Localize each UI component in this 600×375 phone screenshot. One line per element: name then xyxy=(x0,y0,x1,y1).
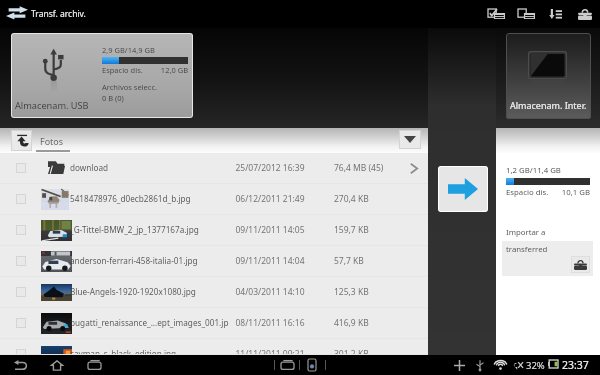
button[interactable]: Deselect all xyxy=(513,2,539,26)
button[interactable]: Tools xyxy=(573,2,597,26)
button[interactable]: transferred xyxy=(502,241,593,276)
button[interactable]: anderson-ferrari-458-italia-01.jpg xyxy=(0,246,428,277)
staticText: download xyxy=(70,162,232,173)
staticText: Almacenam. USB xyxy=(15,99,89,112)
staticText: 04/03/2011 14:10 xyxy=(226,286,314,298)
staticText: Almacenam. Inter. xyxy=(510,99,587,111)
staticText: 0 B (0) xyxy=(102,93,124,103)
button[interactable]: 5418478976_d0ecb2861d_b.jpg xyxy=(0,184,428,215)
staticText: Espacio dis. xyxy=(102,65,143,75)
staticText: Espacio dis. xyxy=(506,187,549,198)
staticText: 10,1 GB xyxy=(540,187,590,198)
staticText: transferred xyxy=(506,244,548,255)
staticText: 23:37 xyxy=(562,358,589,372)
staticText: _G-Tittel-BMW_2_jp_1377167a.jpg xyxy=(70,224,232,235)
staticText: 125,3 KB xyxy=(334,286,404,298)
staticText: 06/12/2011 21:49 xyxy=(226,193,314,205)
button[interactable]: Almacenam. USB xyxy=(12,34,192,117)
staticText: Fotos xyxy=(40,135,64,147)
staticText: 08/11/2011 16:16 xyxy=(226,317,314,329)
staticText: 2,9 GB/14,9 GB xyxy=(102,45,155,55)
button[interactable]: Blue-Angels-1920-1920x1080.jpg xyxy=(0,277,428,308)
staticText: 416,9 KB xyxy=(334,317,404,329)
staticText: 09/11/2011 14:05 xyxy=(226,224,314,236)
staticText: 270,4 KB xyxy=(334,193,404,205)
button[interactable]: _G-Tittel-BMW_2_jp_1377167a.jpg xyxy=(0,215,428,246)
button[interactable]: bugatti_renaissance_...ept_images_001.jp… xyxy=(0,308,428,339)
staticText: 159,7 KB xyxy=(334,224,404,236)
button[interactable]: Up one level xyxy=(11,130,32,151)
staticText: 12,0 GB xyxy=(132,65,188,75)
button[interactable]: Transfer files xyxy=(438,166,488,212)
button[interactable]: Almacenam. Inter. xyxy=(506,33,591,119)
staticText: 09/11/2011 14:04 xyxy=(226,255,314,267)
button[interactable]: Sort xyxy=(545,2,565,26)
staticText: 25/07/2012 16:39 xyxy=(226,162,314,174)
staticText: cayman_s_black_edition.jpg xyxy=(70,348,232,359)
staticText: bugatti_renaissance_...ept_images_001.jp… xyxy=(70,317,232,328)
staticText: Blue-Angels-1920-1920x1080.jpg xyxy=(70,286,232,297)
staticText: 5418478976_d0ecb2861d_b.jpg xyxy=(70,193,232,204)
staticText: Archivos selecc. xyxy=(102,82,157,92)
button[interactable]: Filter xyxy=(399,130,421,149)
button[interactable]: cayman_s_black_edition.jpg xyxy=(0,339,428,355)
staticText: 76,4 MB (45) xyxy=(334,162,404,174)
staticText: anderson-ferrari-458-italia-01.jpg xyxy=(70,255,232,266)
staticText: 32% xyxy=(526,359,545,372)
staticText: 1,2 GB/11,4 GB xyxy=(506,165,561,176)
button[interactable]: Back xyxy=(8,355,32,375)
staticText: 57,7 KB xyxy=(334,255,404,267)
button[interactable]: download xyxy=(0,153,428,184)
button[interactable]: Choose folder xyxy=(571,256,590,273)
button[interactable]: Home xyxy=(45,355,69,375)
button[interactable]: Select all xyxy=(483,2,509,26)
button[interactable]: Recent apps xyxy=(82,355,106,375)
staticText: Importar a xyxy=(506,227,546,238)
staticText: 11/11/2011 09:21 xyxy=(226,348,314,360)
staticText: Transf. archiv. xyxy=(31,8,86,20)
staticText: 301,2 KB xyxy=(334,348,404,360)
